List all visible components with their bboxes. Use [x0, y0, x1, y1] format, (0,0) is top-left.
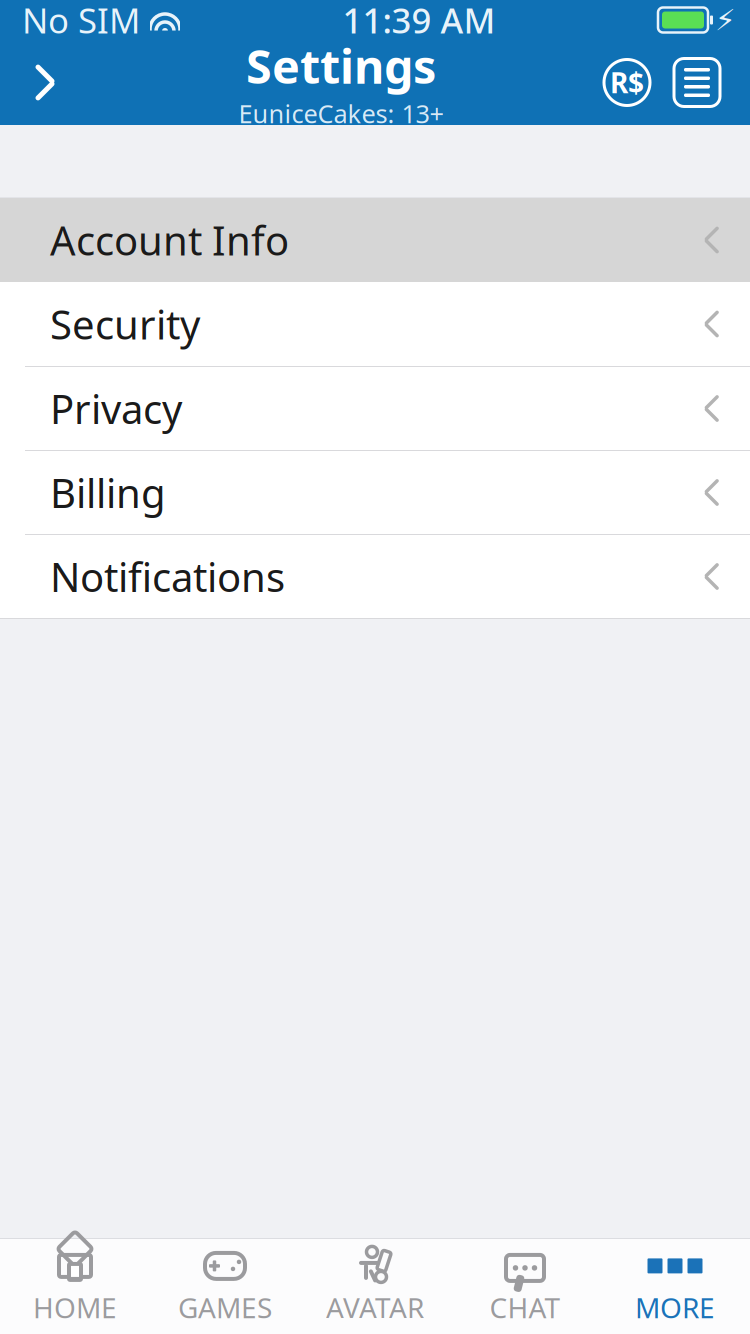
staticText: ⚡︎ — [715, 3, 736, 37]
staticText: Billing — [50, 466, 166, 519]
staticText: HOME — [33, 1289, 117, 1326]
staticText: Security — [50, 297, 200, 350]
staticText: GAMES — [178, 1289, 272, 1326]
button[interactable]: Account Info — [0, 198, 750, 282]
staticText: Notifications — [50, 550, 285, 603]
staticText: CHAT — [489, 1289, 560, 1326]
button[interactable]: Back — [10, 47, 80, 117]
button[interactable]: GAMES — [150, 1240, 300, 1332]
staticText: EuniceCakes: 13+ — [238, 97, 443, 130]
staticText: AVATAR — [326, 1289, 424, 1326]
button[interactable]: MORE — [600, 1240, 750, 1332]
button[interactable]: Notifications — [0, 534, 750, 618]
button[interactable]: Privacy — [0, 366, 750, 450]
staticText: MORE — [635, 1289, 715, 1326]
button[interactable]: Menu — [672, 56, 722, 108]
staticText: R$ — [610, 64, 644, 101]
staticText: Privacy — [50, 382, 182, 435]
button[interactable]: CHAT — [450, 1240, 600, 1332]
staticText: 11:39 AM — [342, 0, 495, 43]
button[interactable]: AVATAR — [300, 1240, 450, 1332]
button[interactable]: HOME — [0, 1240, 150, 1332]
staticText: Settings — [246, 35, 436, 97]
button[interactable]: Security — [0, 282, 750, 366]
button[interactable]: Robux — [602, 57, 652, 107]
button[interactable]: Billing — [0, 450, 750, 534]
staticText: Account Info — [50, 213, 289, 266]
staticText: No SIM — [22, 0, 140, 43]
